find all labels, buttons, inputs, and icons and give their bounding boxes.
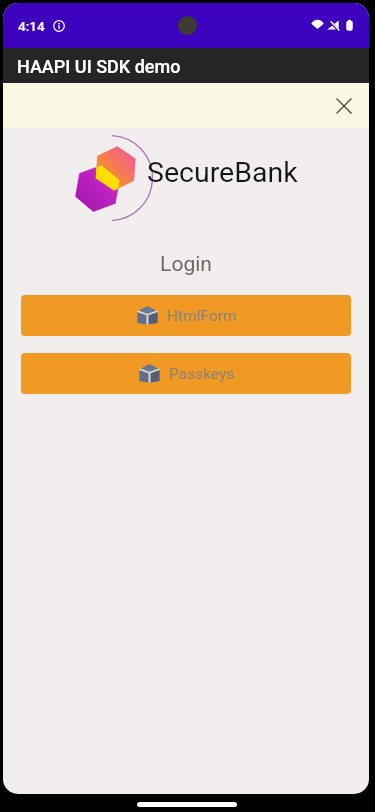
staticText: Passkeys — [169, 365, 235, 383]
button[interactable]: Passkeys — [21, 353, 351, 394]
staticText: Login — [3, 252, 369, 277]
staticText: 4:14 — [18, 18, 45, 34]
staticText: HAAPI UI SDK demo — [17, 56, 181, 77]
staticText: HtmlForm — [167, 307, 237, 325]
button[interactable]: Close — [330, 92, 358, 120]
button[interactable]: HtmlForm — [21, 295, 351, 336]
staticText: SecureBank — [147, 156, 298, 189]
